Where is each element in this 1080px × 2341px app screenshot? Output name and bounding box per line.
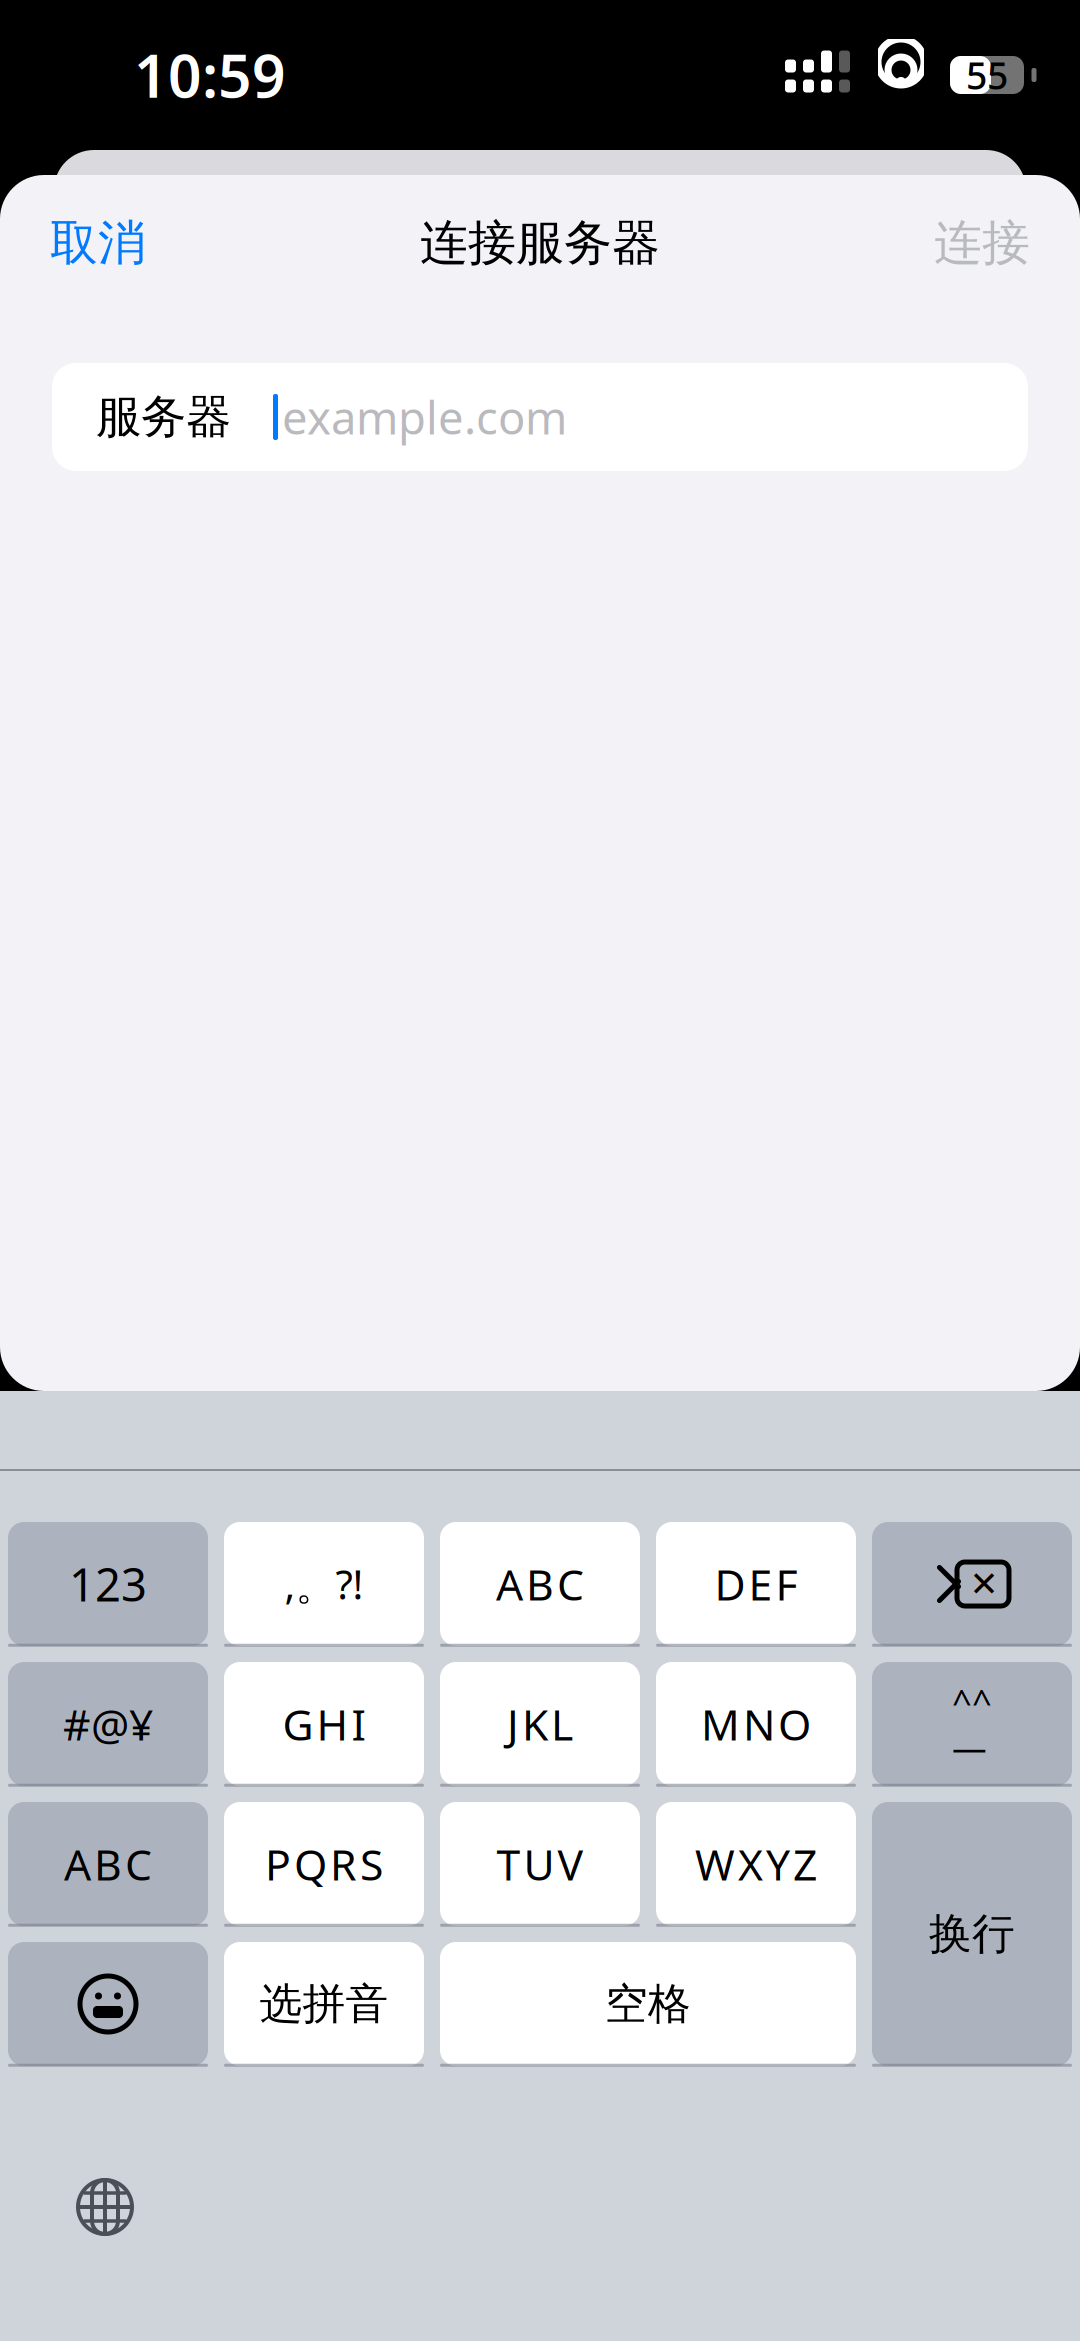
- button[interactable]: JKL: [440, 1662, 640, 1786]
- button[interactable]: GHI: [224, 1662, 424, 1786]
- staticText: 换行: [929, 1908, 1015, 1960]
- button[interactable]: 换行: [872, 1802, 1072, 2066]
- button[interactable]: 取消: [32, 199, 164, 286]
- button[interactable]: ^^ —: [872, 1662, 1072, 1786]
- staticText: 123: [69, 1554, 147, 1614]
- staticText: PQRS: [265, 1836, 383, 1892]
- staticText: JKL: [507, 1696, 573, 1752]
- staticText: #@¥: [63, 1696, 153, 1752]
- button[interactable]: TUV: [440, 1802, 640, 1926]
- button[interactable]: Delete: [872, 1522, 1072, 1646]
- button[interactable]: 空格: [440, 1942, 856, 2066]
- button[interactable]: WXYZ: [656, 1802, 856, 1926]
- button[interactable]: 选拼音: [224, 1942, 424, 2066]
- staticText: 连接服务器: [420, 213, 660, 272]
- button[interactable]: Emoji: [8, 1942, 208, 2066]
- button[interactable]: ABC: [8, 1802, 208, 1926]
- staticText: ABC: [496, 1556, 584, 1612]
- staticText: DEF: [714, 1556, 797, 1612]
- button[interactable]: ,。?!: [224, 1522, 424, 1646]
- staticText: ,。?!: [284, 1557, 363, 1611]
- staticText: example.com: [282, 387, 567, 447]
- button[interactable]: MNO: [656, 1662, 856, 1786]
- button[interactable]: 123: [8, 1522, 208, 1646]
- staticText: TUV: [496, 1836, 583, 1892]
- button[interactable]: 服务器: [52, 363, 1028, 471]
- staticText: ^^ —: [952, 1678, 992, 1770]
- button[interactable]: 连接: [916, 199, 1048, 286]
- staticText: 选拼音: [259, 1978, 388, 2030]
- staticText: WXYZ: [695, 1836, 817, 1892]
- button[interactable]: PQRS: [224, 1802, 424, 1926]
- staticText: 连接: [934, 213, 1030, 272]
- button[interactable]: DEF: [656, 1522, 856, 1646]
- staticText: 取消: [50, 213, 146, 272]
- button[interactable]: Next keyboard: [50, 2159, 160, 2255]
- staticText: ✕: [969, 1564, 998, 1604]
- staticText: GHI: [282, 1696, 365, 1752]
- staticText: 10:59: [134, 36, 286, 114]
- staticText: MNO: [701, 1696, 811, 1752]
- button[interactable]: ABC: [440, 1522, 640, 1646]
- staticText: ABC: [64, 1836, 152, 1892]
- staticText: 55: [966, 50, 1008, 100]
- staticText: 空格: [605, 1978, 691, 2030]
- button[interactable]: #@¥: [8, 1662, 208, 1786]
- staticText: 服务器: [96, 389, 231, 445]
